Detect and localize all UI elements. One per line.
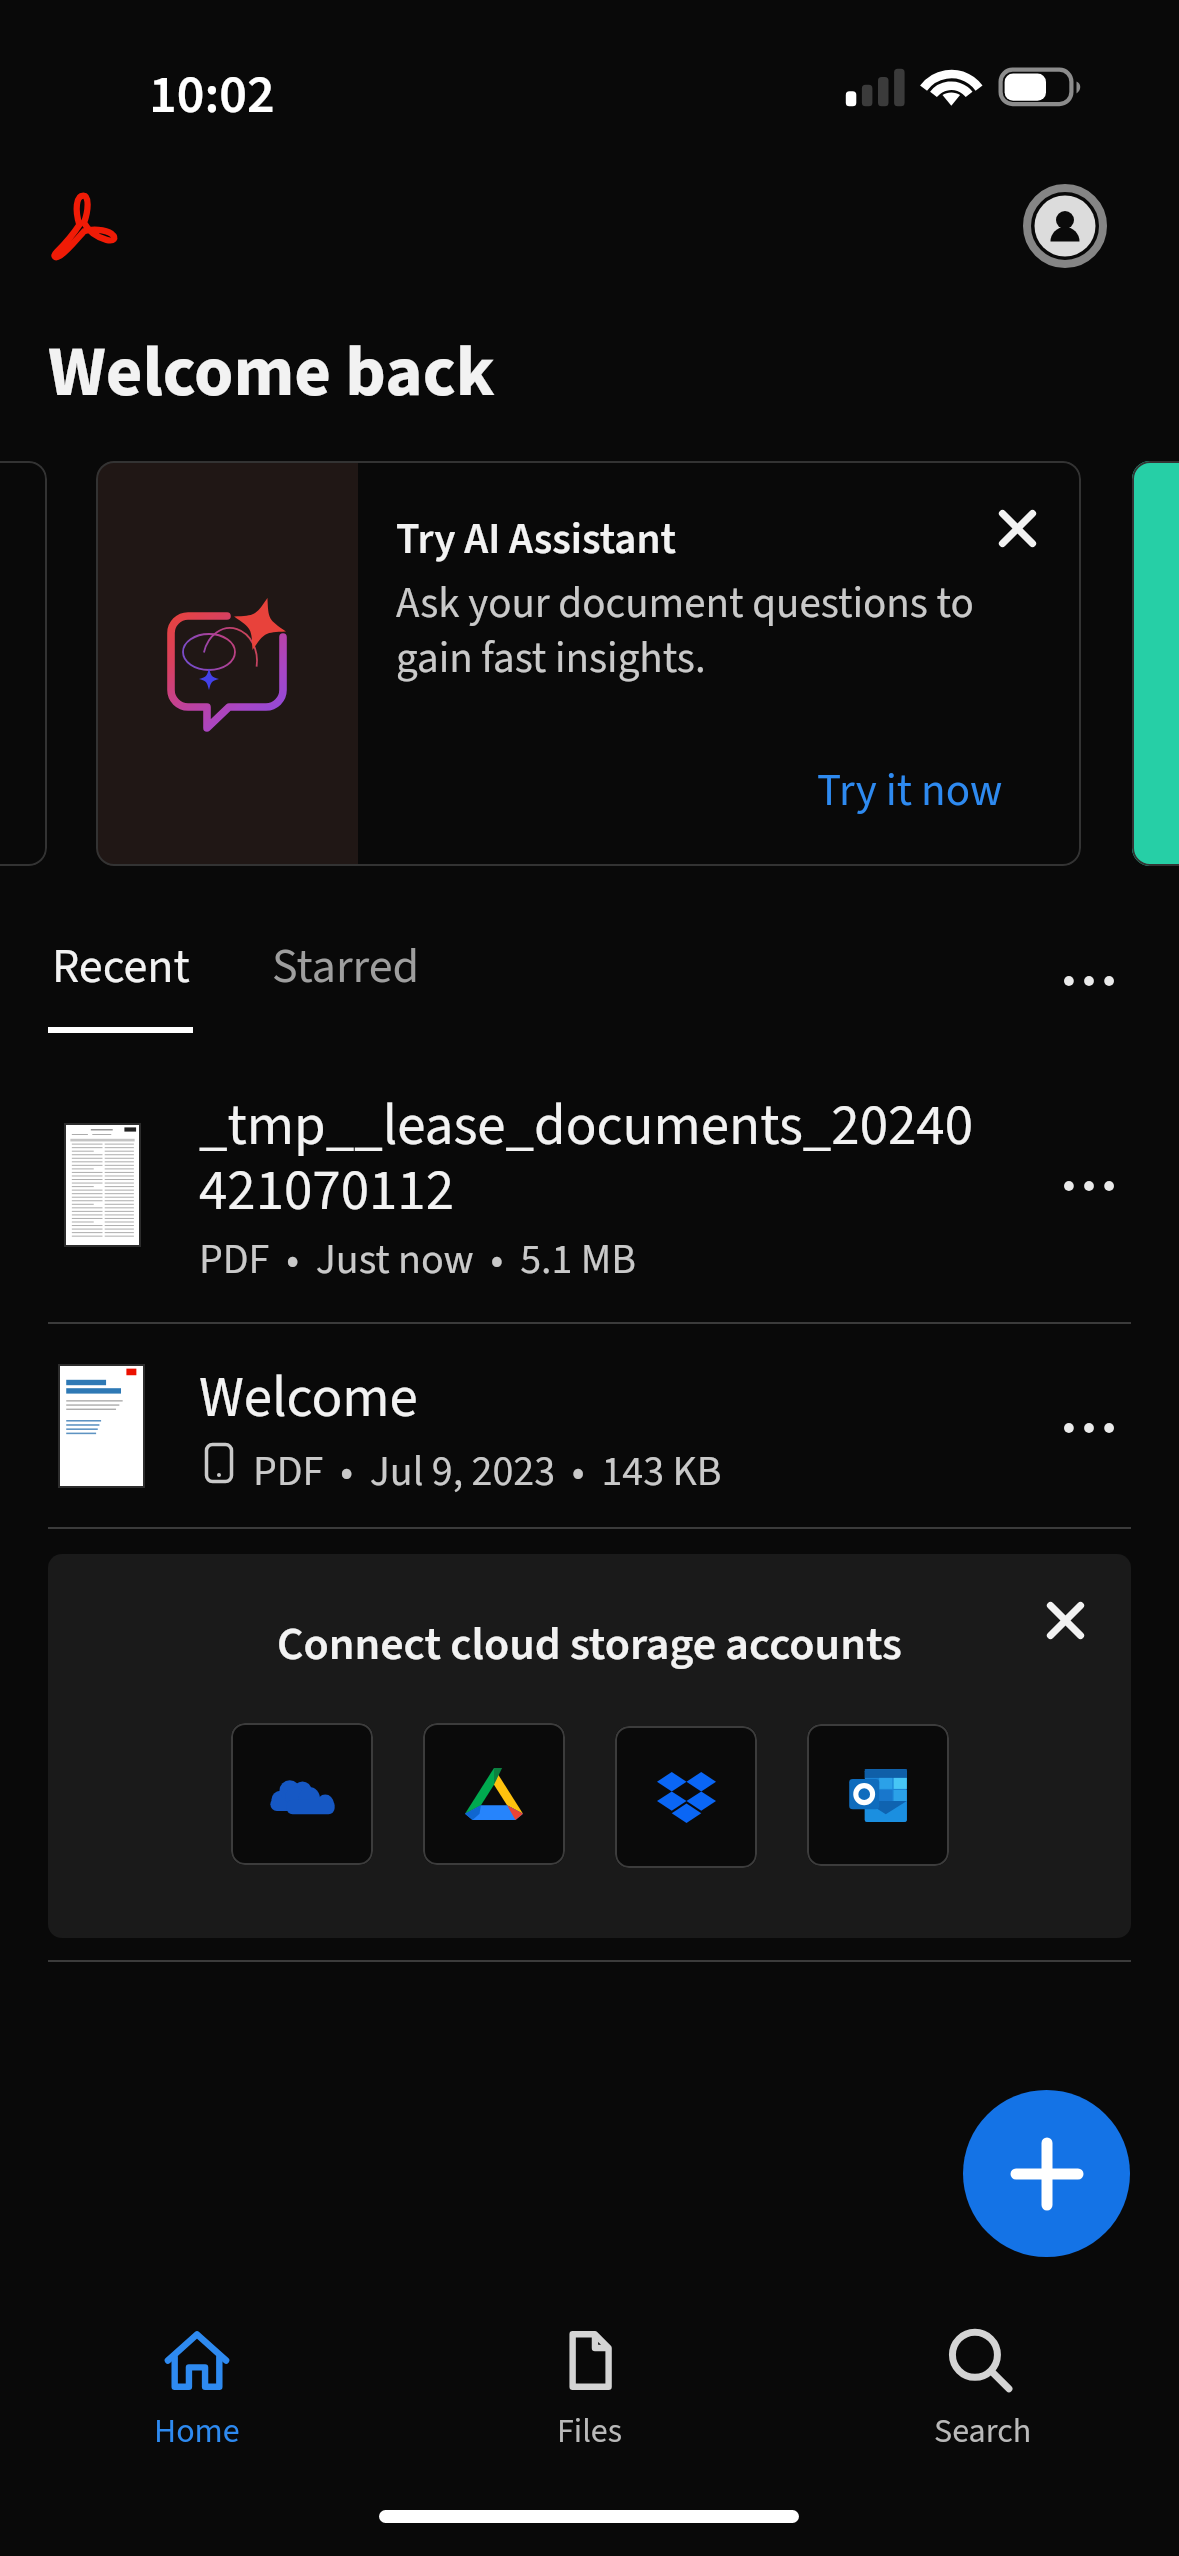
button[interactable]: Try it now	[794, 745, 1024, 837]
button[interactable]: Google Drive	[423, 1723, 565, 1865]
button[interactable]: Files	[393, 2300, 786, 2480]
button[interactable]: Welcome	[0, 1340, 1179, 1525]
button[interactable]: Outlook	[807, 1724, 949, 1866]
button[interactable]: Adobe Acrobat	[32, 174, 136, 278]
staticText: Home	[154, 2407, 240, 2455]
staticText: Try AI Assistant	[396, 509, 677, 570]
button[interactable]	[1132, 461, 1179, 866]
staticText: PDF • Jul 9, 2023 • 143 KB	[253, 1442, 722, 1502]
staticText: Recent	[52, 933, 190, 1001]
button[interactable]: More for Welcome	[1037, 1376, 1141, 1480]
button[interactable]: More for _tmp__lease_documents	[1037, 1134, 1141, 1238]
staticText: PDF • Just now • 5.1 MB	[199, 1230, 637, 1290]
button[interactable]: Account	[1017, 178, 1113, 274]
button[interactable]: Dismiss AI Assistant	[969, 480, 1065, 576]
button[interactable]: Home	[0, 2300, 393, 2480]
staticText: 421070112	[199, 1151, 454, 1232]
button[interactable]: _tmp__lease_documents_20240	[0, 1080, 1179, 1320]
button[interactable]: Dismiss cloud storage	[1017, 1572, 1113, 1668]
button[interactable]: More options	[1037, 929, 1141, 1033]
staticText: Ask your document questions to gain fast…	[396, 573, 974, 689]
staticText: Starred	[272, 933, 420, 1001]
button[interactable]: Create new file	[963, 2090, 1130, 2257]
button[interactable]: Recent	[30, 919, 212, 1015]
button[interactable]: OneDrive	[231, 1723, 373, 1865]
staticText: Connect cloud storage accounts	[277, 1612, 902, 1678]
button[interactable]	[0, 461, 47, 866]
staticText: Welcome	[199, 1358, 418, 1439]
staticText: 10:02	[149, 57, 275, 134]
staticText: _tmp__lease_documents_20240	[199, 1086, 974, 1167]
button[interactable]: Starred	[247, 919, 444, 1015]
button[interactable]: Search	[786, 2300, 1179, 2480]
staticText: Files	[557, 2407, 622, 2455]
staticText: Search	[934, 2407, 1032, 2455]
button[interactable]: Try AI Assistant	[96, 461, 1081, 866]
staticText: Try it now	[817, 759, 1003, 823]
button[interactable]: Dropbox	[615, 1726, 757, 1868]
staticText: Welcome back	[48, 322, 495, 423]
